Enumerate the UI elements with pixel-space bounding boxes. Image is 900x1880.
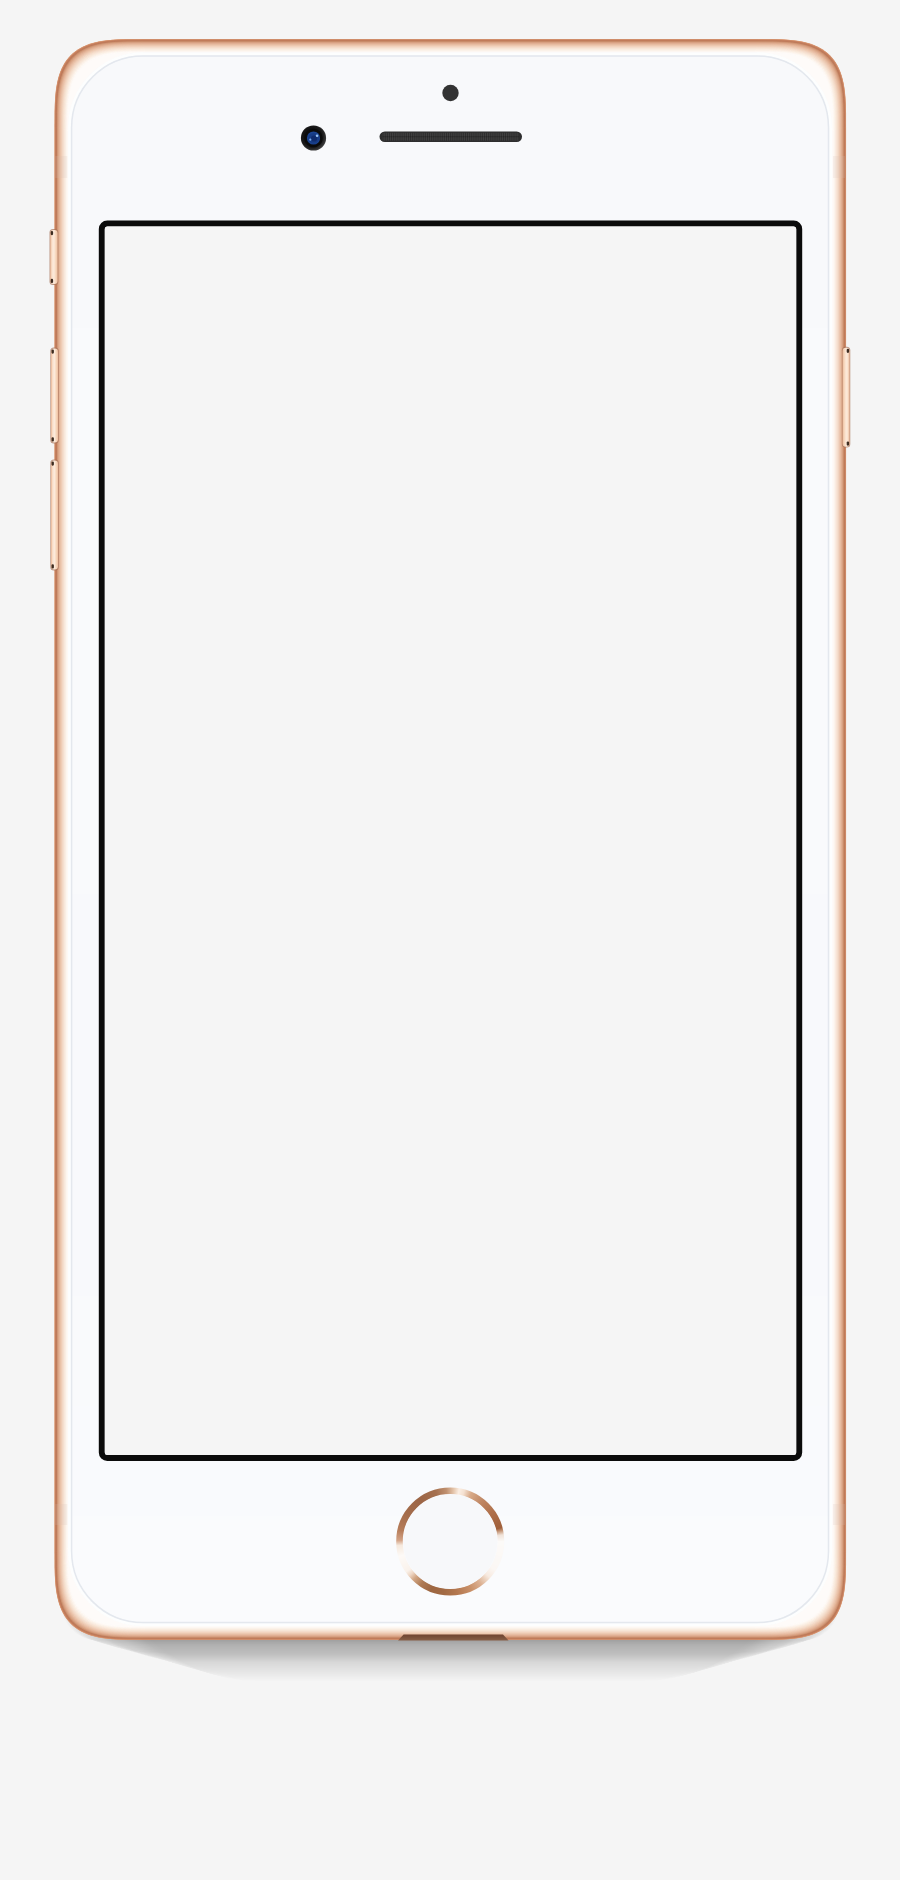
button[interactable]: Display (99, 221, 802, 1461)
button[interactable]: Volume up (46, 346, 60, 444)
button[interactable]: Volume down (46, 458, 60, 571)
button[interactable]: Ring/Silent switch (46, 228, 60, 286)
button[interactable]: Side power button (841, 345, 855, 449)
button[interactable]: Home button (396, 1488, 504, 1596)
